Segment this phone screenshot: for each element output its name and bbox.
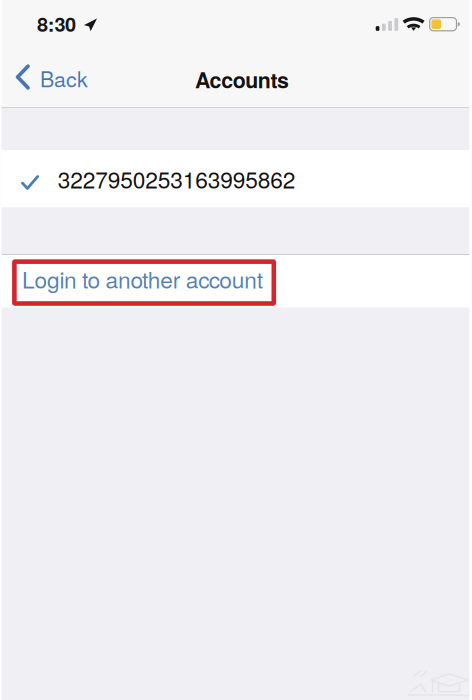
staticText: Back	[40, 63, 88, 93]
staticText: 8:30	[37, 9, 76, 38]
staticText: Login to another account	[22, 262, 263, 295]
button[interactable]: Login to another account	[0, 254, 472, 307]
button[interactable]: Back	[0, 46, 100, 108]
staticText: 3227950253163995862	[58, 162, 296, 195]
button[interactable]: 3227950253163995862	[0, 150, 472, 207]
staticText: Accounts	[195, 64, 289, 95]
